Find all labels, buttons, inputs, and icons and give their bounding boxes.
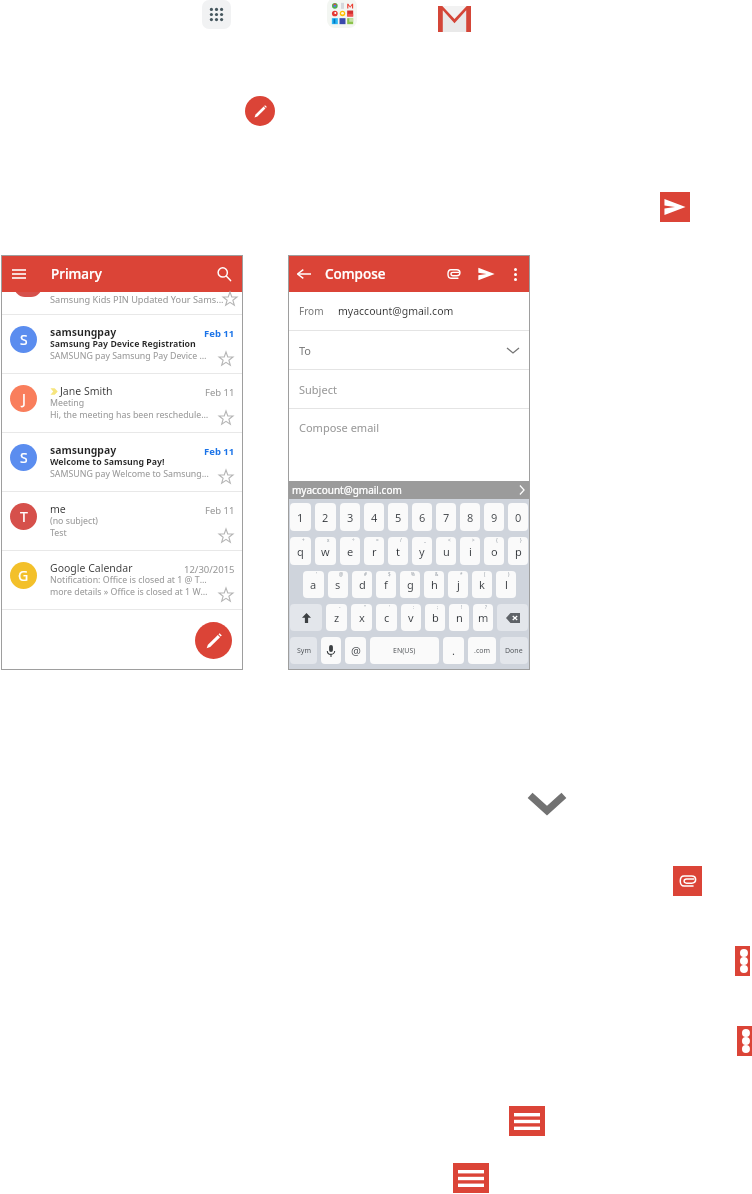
button[interactable]: Sym <box>290 637 317 664</box>
button[interactable]: From <box>288 292 530 330</box>
button[interactable]: a <box>303 571 324 598</box>
button[interactable]: Send <box>660 192 690 222</box>
button[interactable]: Star <box>218 528 234 544</box>
button[interactable]: Subject <box>288 370 530 408</box>
staticText: samsungpay <box>50 325 117 339</box>
button[interactable]: 0 <box>508 503 528 531</box>
button[interactable]: Google apps folder <box>327 0 357 28</box>
button[interactable]: Done <box>500 637 528 664</box>
button[interactable]: More options <box>735 946 750 976</box>
button[interactable] <box>497 604 528 631</box>
button[interactable]: T <box>1 492 243 550</box>
staticText: 9 <box>491 510 498 525</box>
button[interactable]: G <box>1 551 243 609</box>
button[interactable]: k <box>472 571 492 598</box>
button[interactable]: g <box>400 571 420 598</box>
button[interactable]: Navigation menu <box>5 260 33 288</box>
staticText: g <box>407 577 414 592</box>
button[interactable]: . <box>443 637 464 664</box>
button[interactable]: 5 <box>388 503 408 531</box>
button[interactable]: More options <box>737 1026 752 1056</box>
button[interactable]: 7 <box>436 503 456 531</box>
button[interactable]: s <box>328 571 348 598</box>
button[interactable]: v <box>401 604 421 631</box>
staticText: ) <box>508 571 510 577</box>
button[interactable]: 1 <box>290 503 311 531</box>
staticText: samsungpay <box>50 443 117 457</box>
button[interactable]: J <box>1 374 243 432</box>
staticText: d <box>359 577 366 592</box>
staticText: Notification: Office is closed at 1 @ Th… <box>50 574 210 586</box>
staticText: q <box>297 544 304 559</box>
button[interactable]: Compose <box>245 96 275 126</box>
button[interactable]: Back <box>292 262 316 286</box>
staticText: @ <box>339 571 344 577</box>
button[interactable]: e <box>340 537 360 565</box>
staticText: k <box>479 577 485 592</box>
button[interactable]: 3 <box>340 503 360 531</box>
button[interactable]: Gmail <box>438 6 471 32</box>
button[interactable]: S <box>1 315 243 373</box>
button[interactable]: n <box>449 604 469 631</box>
staticText: 4 <box>371 510 378 525</box>
button[interactable]: y <box>412 537 432 565</box>
button[interactable]: j <box>448 571 468 598</box>
button[interactable]: Compose email <box>288 409 530 481</box>
button[interactable]: Search <box>210 260 238 288</box>
button[interactable]: h <box>424 571 444 598</box>
button[interactable]: Star <box>222 291 238 307</box>
staticText: _ <box>424 537 426 543</box>
button[interactable]: d <box>352 571 372 598</box>
button[interactable]: Apps <box>202 0 231 29</box>
button[interactable]: q <box>290 537 311 565</box>
button[interactable]: 4 <box>364 503 384 531</box>
staticText: Samsung Pay Device Registration <box>50 338 196 350</box>
button[interactable]: Samsung Kids PIN Updated Your Sams... <box>1 292 243 314</box>
button[interactable]: f <box>376 571 396 598</box>
staticText: 12/30/2015 <box>184 563 235 576</box>
button[interactable]: Star <box>218 469 234 485</box>
button[interactable]: 2 <box>315 503 336 531</box>
button[interactable]: b <box>425 604 445 631</box>
staticText: x <box>327 537 330 543</box>
button[interactable]: z <box>326 604 347 631</box>
button[interactable]: Star <box>218 587 234 603</box>
button[interactable]: p <box>508 537 528 565</box>
button[interactable]: Attach file <box>442 262 466 286</box>
staticText: Jane Smith <box>60 384 113 398</box>
button[interactable]: myaccount@gmail.com <box>288 481 530 499</box>
button[interactable]: r <box>364 537 384 565</box>
button[interactable]: t <box>388 537 408 565</box>
button[interactable]: x <box>351 604 372 631</box>
button[interactable]: m <box>473 604 493 631</box>
button[interactable]: To <box>288 331 530 369</box>
staticText: % <box>411 571 415 577</box>
button[interactable]: Compose <box>195 622 232 659</box>
button[interactable]: u <box>436 537 456 565</box>
button[interactable]: w <box>315 537 336 565</box>
staticText: Meeting <box>50 397 85 409</box>
button[interactable]: c <box>376 604 397 631</box>
button[interactable]: EN(US) <box>370 637 439 664</box>
button[interactable]: Star <box>218 351 234 367</box>
button[interactable]: Star <box>218 410 234 426</box>
button[interactable] <box>290 604 322 631</box>
button[interactable]: Attach <box>673 866 702 896</box>
button[interactable]: Menu <box>509 1106 545 1136</box>
button[interactable]: l <box>496 571 516 598</box>
button[interactable]: 9 <box>484 503 504 531</box>
button[interactable]: S <box>1 433 243 491</box>
button[interactable] <box>321 637 341 664</box>
button[interactable]: More options <box>506 265 524 283</box>
button[interactable]: Menu <box>453 1163 489 1193</box>
button[interactable]: @ <box>345 637 366 664</box>
button[interactable]: Send <box>474 262 498 286</box>
button[interactable]: 6 <box>412 503 432 531</box>
button[interactable]: i <box>460 537 480 565</box>
button[interactable]: Expand <box>525 788 569 818</box>
button[interactable]: o <box>484 537 504 565</box>
staticText: x <box>359 610 365 625</box>
button[interactable]: .com <box>468 637 496 664</box>
button[interactable]: 8 <box>460 503 480 531</box>
staticText: SAMSUNG pay Welcome to Samsung... <box>50 468 209 480</box>
